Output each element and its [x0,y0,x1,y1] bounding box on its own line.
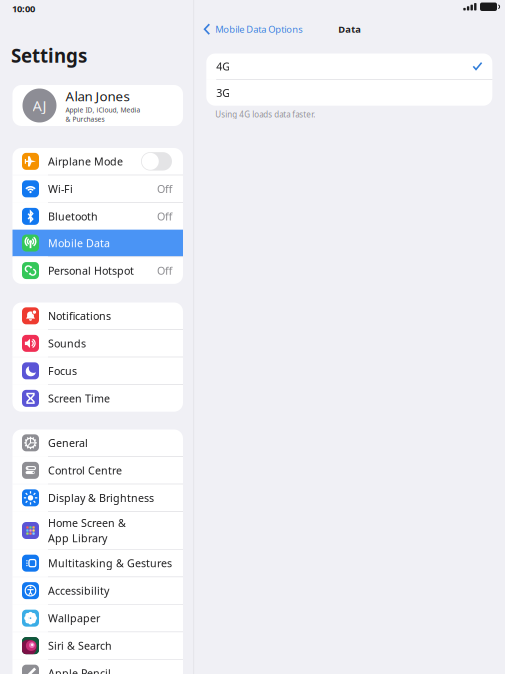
staticText: Settings [11,43,87,68]
staticText: 4G [216,59,230,73]
staticText: Apple ID, iCloud, Media [65,105,140,114]
button[interactable]: Multitasking & Gestures [12,550,183,576]
staticText: Alan Jones [65,87,129,105]
staticText: Multitasking & Gestures [48,556,172,570]
staticText: Off [157,209,172,223]
staticText: Screen Time [48,391,110,405]
staticText: App Library [48,531,107,545]
button[interactable]: Notifications [12,302,183,329]
staticText: Notifications [48,309,111,323]
button[interactable]: 4G [206,53,492,79]
staticText: Control Centre [48,463,122,477]
staticText: Apple Pencil [48,666,111,674]
button[interactable]: Mobile Data [12,230,183,256]
button[interactable]: Control Centre [12,457,183,484]
button[interactable]: Display & Brightness [12,484,183,511]
button[interactable]: Siri & Search [12,632,183,659]
button[interactable]: Focus [12,357,183,384]
staticText: AJ [32,96,46,115]
staticText: Siri & Search [48,639,112,653]
staticText: Mobile Data Options [215,23,302,35]
button[interactable]: Airplane Mode [12,148,183,175]
staticText: 10:00 [12,2,35,15]
staticText: Display & Brightness [48,491,154,505]
button[interactable]: Apple Pencil [12,660,183,674]
button[interactable]: Data [338,20,361,38]
staticText: General [48,436,88,450]
staticText: Wi-Fi [48,182,73,196]
button[interactable]: Screen Time [12,385,183,412]
button[interactable]: Personal Hotspot [12,257,183,284]
staticText: Mobile Data [48,236,110,250]
button[interactable]: General [12,429,183,456]
staticText: Personal Hotspot [48,263,134,278]
button[interactable]: 3G [206,80,492,106]
staticText: 3G [216,86,230,100]
button[interactable]: Sounds [12,330,183,357]
staticText: Wallpaper [48,611,100,625]
button[interactable]: Bluetooth [12,203,183,230]
staticText: Off [157,263,172,278]
staticText: Off [157,182,172,196]
button[interactable]: AJ [12,85,183,126]
staticText: Sounds [48,336,86,350]
button[interactable]: Wallpaper [12,605,183,631]
button[interactable]: Mobile Data Options [204,20,302,38]
staticText: Focus [48,364,77,378]
staticText: Airplane Mode [48,154,123,168]
staticText: Accessibility [48,584,109,598]
staticText: & Purchases [65,115,104,124]
button[interactable]: Wi-Fi [12,175,183,202]
staticText: Bluetooth [48,209,98,223]
staticText: Data [338,23,361,35]
staticText: Home Screen & [48,516,126,530]
button[interactable]: Accessibility [12,577,183,604]
button[interactable]: Home Screen & [12,512,183,549]
staticText: Using 4G loads data faster. [215,109,315,120]
